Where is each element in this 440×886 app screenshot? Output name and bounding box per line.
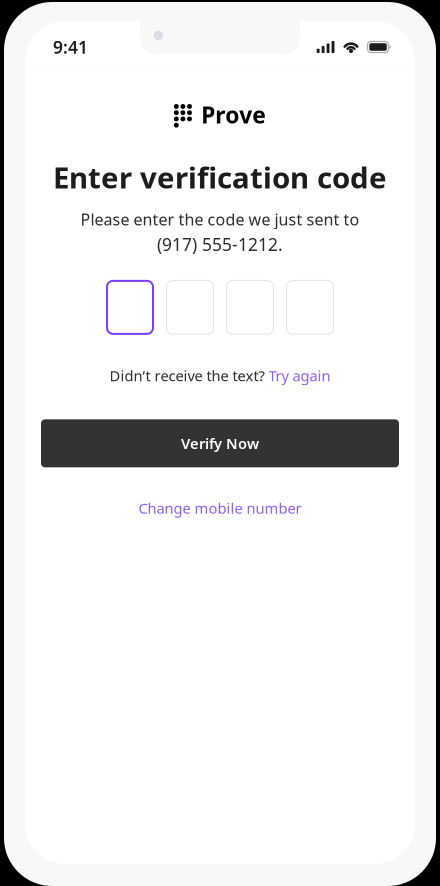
- button[interactable]: Change mobile number: [138, 498, 301, 518]
- staticText: Enter verification code: [53, 158, 387, 197]
- staticText: Try again: [268, 366, 330, 385]
- button[interactable]: Verify Now: [41, 419, 399, 467]
- staticText: Please enter the code we just sent to: [80, 209, 359, 230]
- button[interactable]: Verification digit 3: [226, 280, 274, 335]
- button[interactable]: Try again: [268, 366, 330, 385]
- staticText: 9:41: [53, 35, 88, 58]
- button[interactable]: Verification digit 4: [286, 280, 334, 335]
- button[interactable]: Verification digit 2: [166, 280, 214, 335]
- button[interactable]: Verification digit 1: [106, 280, 154, 335]
- staticText: Prove: [201, 100, 266, 130]
- staticText: Verify Now: [181, 434, 259, 453]
- staticText: Didn’t receive the text?: [109, 366, 264, 385]
- staticText: (917) 555-1212.: [157, 233, 283, 256]
- staticText: Change mobile number: [138, 498, 301, 518]
